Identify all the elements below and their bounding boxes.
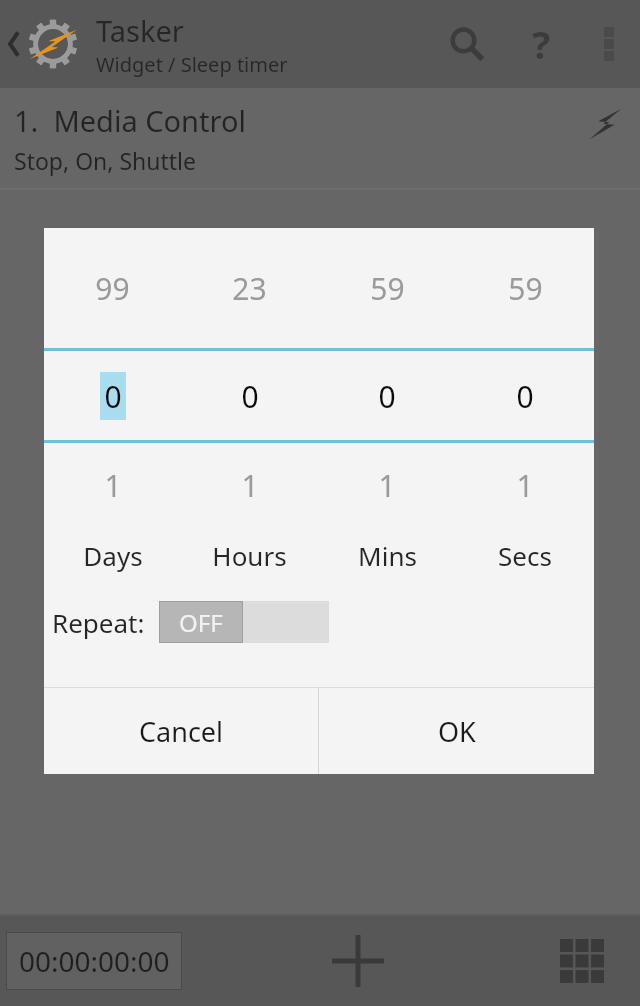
staticText: 0 [378, 376, 396, 417]
button[interactable]: Help [504, 0, 578, 88]
button[interactable]: 23 [181, 268, 318, 309]
staticText: OFF [179, 606, 223, 639]
button[interactable]: 0 [318, 351, 456, 440]
staticText: 59 [508, 268, 543, 309]
button[interactable]: 0 [44, 351, 181, 440]
staticText: 00:00:00:00 [19, 942, 170, 980]
staticText: 0 [516, 376, 534, 417]
staticText: Hours [212, 538, 287, 573]
staticText: Stop, On, Shuttle [14, 145, 197, 176]
staticText: 0 [241, 376, 259, 417]
button[interactable]: 00:00:00:00 [6, 932, 182, 990]
button[interactable]: Secs [456, 538, 594, 573]
button[interactable]: 59 [318, 268, 456, 309]
staticText: 1 [104, 465, 122, 506]
button[interactable]: Run task [570, 93, 640, 183]
button[interactable]: 1 [181, 465, 318, 506]
staticText: 23 [232, 268, 267, 309]
button[interactable]: 1 [318, 465, 456, 506]
button[interactable]: Add [310, 916, 406, 1006]
button[interactable]: Tasker [96, 11, 428, 78]
button[interactable]: Cancel [44, 688, 318, 774]
staticText: Mins [358, 538, 417, 573]
button[interactable]: Hours [181, 538, 318, 573]
button[interactable]: Mins [318, 538, 456, 573]
button[interactable]: Apps grid [534, 916, 630, 1006]
button[interactable]: 1 [44, 465, 181, 506]
staticText: Secs [498, 538, 552, 573]
staticText: 1 [378, 465, 396, 506]
staticText: 1. Media Control [14, 101, 246, 140]
button[interactable]: 0 [456, 351, 594, 440]
button[interactable]: Search [428, 0, 504, 88]
button[interactable]: 0 [181, 351, 318, 440]
button[interactable]: OK [319, 688, 594, 774]
staticText: ? [532, 18, 551, 70]
button[interactable]: 99 [44, 268, 181, 309]
staticText: Repeat: [52, 605, 145, 640]
staticText: 59 [370, 268, 405, 309]
button[interactable]: Days [44, 538, 181, 573]
staticText: 1 [516, 465, 534, 506]
button[interactable]: OFF [159, 601, 329, 643]
button[interactable]: Navigate up [0, 0, 88, 88]
staticText: 0 [104, 376, 122, 417]
staticText: Days [83, 538, 143, 573]
button[interactable]: 59 [456, 268, 594, 309]
staticText: Tasker [96, 11, 184, 50]
staticText: OK [438, 713, 476, 750]
button[interactable]: 1. Media Control [0, 88, 640, 190]
button[interactable]: 1 [456, 465, 594, 506]
staticText: 1 [241, 465, 259, 506]
staticText: Cancel [139, 713, 224, 750]
staticText: 99 [95, 268, 130, 309]
staticText: Widget / Sleep timer [96, 51, 288, 78]
